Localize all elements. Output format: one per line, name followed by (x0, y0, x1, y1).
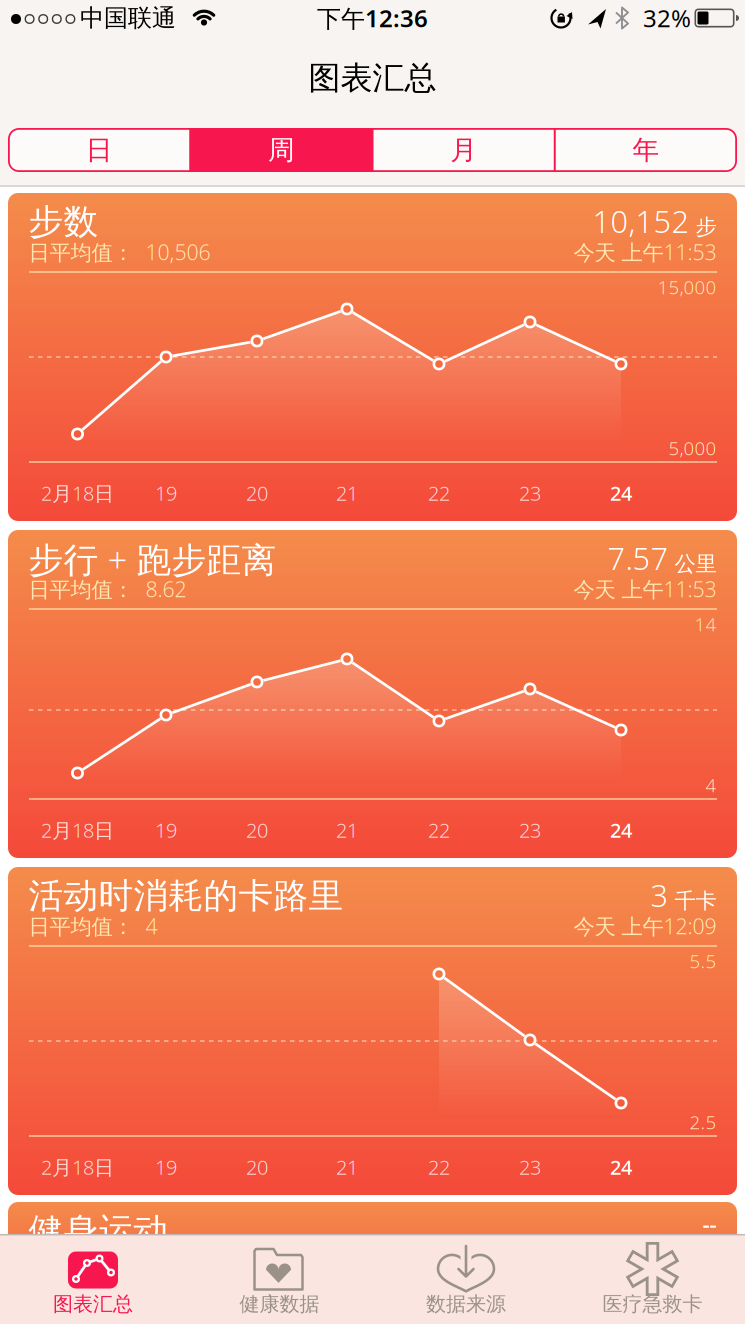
staticText: 2月18日 (41, 480, 114, 506)
staticText: 20 (246, 480, 268, 506)
staticText: 24 (610, 1154, 632, 1180)
staticText: 7.57 公里 (607, 538, 716, 578)
staticText: 数据来源 (426, 1292, 506, 1316)
staticText: 24 (610, 480, 632, 506)
staticText: 23 (519, 1154, 541, 1180)
staticText: 月 (450, 134, 477, 166)
staticText: 32% (643, 2, 691, 34)
staticText: 周 (268, 134, 295, 166)
staticText: 中国联通 (80, 3, 176, 33)
button[interactable]: 活动时消耗的卡路里 (8, 867, 737, 1195)
staticText: 2月18日 (41, 1154, 114, 1180)
staticText: 5.5 (689, 949, 716, 973)
staticText: 步行 + 跑步距离 (28, 536, 276, 582)
staticText: 24 (610, 817, 632, 843)
button[interactable]: 健身运动 (8, 1202, 737, 1322)
staticText: 5,000 (668, 436, 716, 460)
staticText: -- (702, 1209, 716, 1239)
button[interactable]: 周 (192, 128, 370, 172)
staticText: 日平均值： 10,506 (28, 238, 210, 266)
staticText: 21 (336, 480, 358, 506)
button[interactable]: 月 (374, 128, 553, 172)
staticText: 10,152 步 (592, 201, 716, 241)
staticText: 健康数据 (239, 1292, 319, 1316)
staticText: 健身运动 (28, 1210, 168, 1252)
staticText: 活动时消耗的卡路里 (28, 875, 343, 917)
button[interactable]: 日 (10, 128, 188, 172)
staticText: 步数 (28, 201, 98, 243)
staticText: 21 (336, 817, 358, 843)
staticText: 15,000 (657, 275, 716, 299)
staticText: 20 (246, 1154, 268, 1180)
button[interactable]: 步数 (8, 193, 737, 521)
staticText: 下午12:36 (317, 2, 428, 34)
staticText: 2.5 (689, 1110, 716, 1134)
staticText: 23 (519, 817, 541, 843)
staticText: 23 (519, 480, 541, 506)
staticText: 22 (428, 1154, 450, 1180)
staticText: 图表汇总 (53, 1292, 133, 1316)
button[interactable]: 图表汇总 (13, 1234, 173, 1324)
staticText: 今天 上午12:09 (573, 912, 716, 940)
staticText: 19 (155, 817, 177, 843)
button[interactable]: 医疗急救卡 (572, 1234, 732, 1324)
staticText: 19 (155, 480, 177, 506)
staticText: 19 (155, 1154, 177, 1180)
staticText: 今天 上午11:53 (573, 238, 716, 266)
staticText: 图表汇总 (308, 58, 436, 98)
staticText: 3 千卡 (650, 875, 716, 915)
staticText: 今天 上午11:53 (573, 575, 716, 603)
button[interactable]: 数据来源 (386, 1234, 546, 1324)
staticText: 20 (246, 817, 268, 843)
staticText: 年 (632, 134, 659, 166)
button[interactable]: 健康数据 (199, 1234, 359, 1324)
staticText: 日平均值： 4 (28, 912, 157, 940)
staticText: 14 (694, 612, 716, 636)
staticText: 4 (705, 773, 716, 797)
button[interactable]: 步行 + 跑步距离 (8, 530, 737, 858)
staticText: 医疗急救卡 (602, 1292, 702, 1316)
staticText: 22 (428, 480, 450, 506)
staticText: 22 (428, 817, 450, 843)
staticText: 日 (86, 134, 113, 166)
staticText: 2月18日 (41, 817, 114, 843)
button[interactable]: 年 (557, 128, 735, 172)
staticText: 日平均值： 8.62 (28, 575, 186, 603)
staticText: 21 (336, 1154, 358, 1180)
